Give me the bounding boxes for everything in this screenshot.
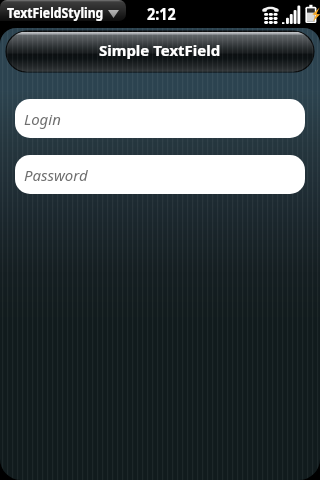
other: Expand <box>108 10 119 18</box>
button[interactable]: TextFieldStyling <box>0 0 126 21</box>
button[interactable]: Password <box>15 155 305 194</box>
button[interactable]: Simple TextField <box>0 28 320 74</box>
staticText: Password <box>24 165 88 185</box>
other: USB debugging <box>262 0 279 28</box>
staticText: Login <box>24 109 61 129</box>
staticText: TextFieldStyling <box>7 3 104 21</box>
button[interactable]: Login <box>15 99 305 138</box>
other: Battery charging <box>305 0 320 28</box>
staticText: Simple TextField <box>99 40 221 60</box>
other: Signal strength <box>282 0 301 28</box>
staticText: 2:12 <box>147 3 176 25</box>
